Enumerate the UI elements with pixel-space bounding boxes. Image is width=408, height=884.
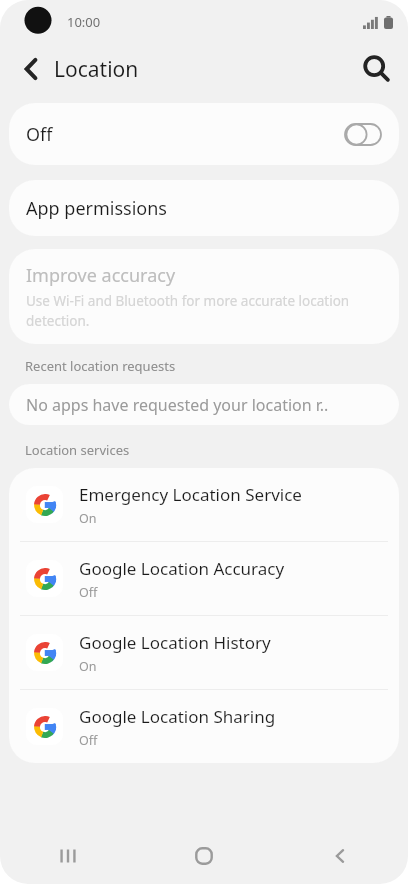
staticText: Improve accuracy xyxy=(26,263,176,288)
button[interactable]: Off xyxy=(9,103,399,165)
staticText: Google Location Accuracy xyxy=(79,557,285,580)
button[interactable]: Google Location History xyxy=(9,616,399,689)
staticText: Google Location History xyxy=(79,631,271,654)
staticText: App permissions xyxy=(26,196,167,221)
button[interactable]: App permissions xyxy=(9,180,399,236)
button[interactable]: Home xyxy=(136,828,272,884)
staticText: Off xyxy=(79,732,98,749)
button[interactable]: Google Location Accuracy xyxy=(9,542,399,615)
button[interactable]: Google Location Sharing xyxy=(9,690,399,763)
staticText: Location xyxy=(54,55,139,84)
staticText: 10:00 xyxy=(67,13,101,31)
staticText: Emergency Location Service xyxy=(79,483,302,506)
button[interactable]: Back xyxy=(14,52,48,86)
staticText: On xyxy=(79,658,97,675)
staticText: No apps have requested your location r.. xyxy=(26,394,329,416)
staticText: Recent location requests xyxy=(25,357,176,375)
staticText: Off xyxy=(26,122,53,147)
staticText: Use Wi-Fi and Bluetooth for more accurat… xyxy=(26,292,382,330)
staticText: Google Location Sharing xyxy=(79,705,276,728)
button[interactable]: Recents xyxy=(0,828,136,884)
staticText: Off xyxy=(79,584,98,601)
staticText: Location services xyxy=(25,441,130,459)
button[interactable]: Emergency Location Service xyxy=(9,468,399,541)
staticText: On xyxy=(79,510,97,527)
button[interactable]: Search xyxy=(358,51,394,87)
button[interactable]: Back xyxy=(272,828,408,884)
